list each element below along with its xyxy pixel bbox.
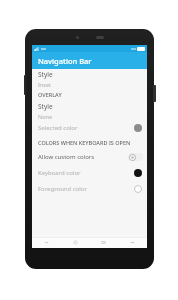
button[interactable]: Menu <box>129 239 136 246</box>
staticText: None <box>38 113 53 120</box>
staticText: Selected color <box>38 124 134 132</box>
button[interactable]: Allow custom colors <box>32 149 147 165</box>
button[interactable]: Foreground color <box>32 181 147 197</box>
button[interactable]: Recents <box>100 239 107 246</box>
staticText: Style <box>38 102 53 111</box>
button[interactable]: Home <box>72 239 79 246</box>
staticText: COLORS WHEN KEYBOARD IS OPEN <box>38 139 131 146</box>
button[interactable]: Style <box>32 101 147 120</box>
button[interactable]: Selected color <box>32 120 147 136</box>
staticText: OVERLAY <box>38 91 62 98</box>
staticText: Style <box>38 70 53 79</box>
button[interactable]: Keyboard color <box>32 165 147 181</box>
staticText: Foreground color <box>38 185 134 193</box>
staticText: Allow custom colors <box>38 153 128 161</box>
button[interactable]: Back <box>43 239 50 246</box>
staticText: Inset <box>38 81 51 88</box>
button[interactable]: Style <box>32 69 147 88</box>
staticText: Keyboard color <box>38 169 134 177</box>
staticText: Navigation Bar <box>38 56 92 66</box>
